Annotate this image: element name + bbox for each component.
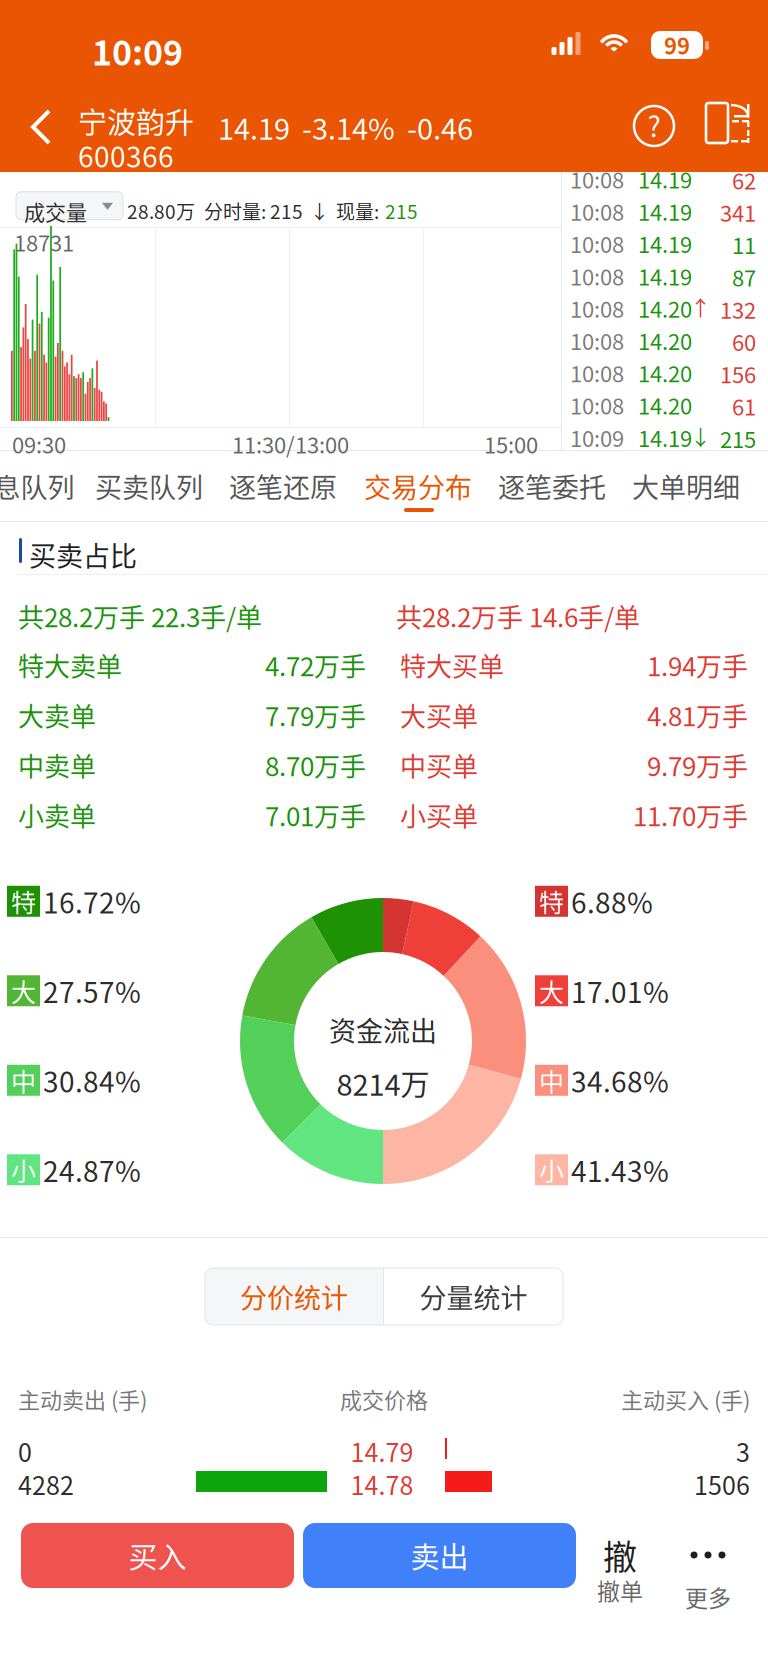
staticText: 10:08: [570, 389, 624, 421]
staticText: 卖出: [410, 1534, 468, 1576]
staticText: 中: [11, 1062, 36, 1098]
staticText: 14.19: [638, 195, 692, 227]
staticText: ↓: [310, 197, 329, 224]
button[interactable]: 买卖队列: [93, 451, 205, 521]
staticText: 27.57%: [43, 970, 141, 1011]
staticText: 大: [539, 973, 564, 1009]
staticText: 特大卖单: [18, 646, 122, 684]
staticText: 分价统计: [240, 1277, 348, 1316]
staticText: 10:08: [570, 195, 624, 227]
staticText: 逐笔委托: [498, 466, 606, 506]
button[interactable]: 返回: [14, 94, 70, 160]
staticText: ↓: [690, 420, 711, 451]
button[interactable]: 帮助: [632, 104, 676, 148]
staticText: 156: [720, 358, 756, 390]
staticText: 交易分布: [364, 466, 472, 506]
staticText: 中买单: [400, 746, 478, 784]
staticText: 买入: [128, 1534, 186, 1576]
staticText: 10:08: [570, 292, 624, 324]
staticText: 特: [11, 883, 36, 919]
staticText: 600366: [78, 135, 174, 175]
staticText: 18731: [14, 226, 74, 258]
staticText: 15:00: [484, 428, 538, 460]
staticText: 分量统计: [419, 1277, 527, 1316]
staticText: 10:09: [570, 421, 624, 453]
staticText: 41.43%: [571, 1149, 669, 1190]
staticText: 62: [732, 164, 756, 196]
staticText: 60: [732, 325, 756, 357]
staticText: 30.84%: [43, 1060, 141, 1100]
button[interactable]: 逐笔委托: [496, 451, 608, 521]
staticText: 中: [539, 1062, 564, 1098]
button[interactable]: 更多: [668, 1520, 748, 1590]
staticText: 大: [11, 973, 36, 1009]
staticText: 小: [539, 1152, 564, 1188]
staticText: 4.72万手: [265, 646, 366, 684]
staticText: 小买单: [400, 796, 478, 834]
staticText: 大单明细: [632, 466, 740, 506]
staticText: 14.19: [638, 228, 692, 259]
staticText: 成交价格: [340, 1383, 428, 1415]
button[interactable]: 卖出: [303, 1523, 576, 1588]
button[interactable]: 买入: [21, 1523, 294, 1588]
staticText: 0: [18, 1433, 32, 1469]
staticText: 10:08: [570, 260, 624, 292]
staticText: 买卖队列: [95, 466, 203, 506]
staticText: 17.01%: [571, 970, 669, 1011]
staticText: 3: [736, 1433, 750, 1469]
button[interactable]: 息队列: [0, 451, 90, 521]
button[interactable]: 分价统计: [205, 1268, 383, 1325]
staticText: 4.81万手: [647, 696, 748, 734]
staticText: 逐笔还原: [229, 466, 337, 506]
staticText: 14.19: [638, 163, 692, 195]
button[interactable]: 交易分布: [362, 451, 474, 521]
staticText: 16.72%: [43, 881, 141, 921]
staticText: 中卖单: [18, 746, 96, 784]
staticText: 61: [732, 390, 756, 422]
staticText: 息队列: [0, 466, 74, 506]
staticText: 14.20: [638, 389, 692, 421]
staticText: 24.87%: [43, 1149, 141, 1190]
staticText: 28.80万: [127, 197, 195, 224]
staticText: 特大买单: [400, 646, 504, 684]
staticText: 小: [11, 1152, 36, 1188]
staticText: 10:08: [570, 324, 624, 356]
button[interactable]: 成交量: [16, 193, 123, 221]
staticText: 9.79万手: [647, 746, 748, 784]
staticText: 10:08: [570, 228, 624, 259]
button[interactable]: 大单明细: [630, 451, 742, 521]
staticText: 大卖单: [18, 696, 96, 734]
staticText: 8214万: [336, 1062, 429, 1104]
staticText: 215: [720, 422, 756, 454]
staticText: 10:08: [570, 163, 624, 195]
button[interactable]: 切换布局: [706, 102, 752, 148]
staticText: 特: [539, 883, 564, 919]
staticText: 6.88%: [571, 881, 653, 921]
staticText: ↑: [690, 291, 711, 322]
staticText: 14.20: [638, 292, 692, 324]
staticText: ?: [647, 105, 660, 145]
staticText: 09:30: [12, 428, 66, 460]
staticText: 11: [732, 229, 756, 260]
staticText: 87: [732, 261, 756, 293]
staticText: 10:09: [92, 26, 183, 75]
staticText: 更多: [685, 1580, 731, 1613]
staticText: 分时量: 215: [204, 197, 303, 224]
button[interactable]: 撤: [580, 1520, 660, 1590]
staticText: 1.94万手: [647, 646, 748, 684]
staticText: 主动买入 (手): [621, 1383, 750, 1415]
staticText: 小卖单: [18, 796, 96, 834]
staticText: 共28.2万手 14.6手/单: [396, 597, 640, 635]
staticText: 215: [385, 197, 418, 224]
staticText: 撤: [603, 1530, 637, 1580]
staticText: 132: [720, 293, 756, 325]
staticText: 8.70万手: [265, 746, 366, 784]
staticText: 大买单: [400, 696, 478, 734]
button[interactable]: 分量统计: [384, 1268, 563, 1325]
staticText: 7.79万手: [265, 696, 366, 734]
staticText: 14.19 -3.14% -0.46: [218, 106, 473, 148]
staticText: 1506: [694, 1466, 750, 1502]
button[interactable]: 逐笔还原: [227, 451, 339, 521]
staticText: 共28.2万手 22.3手/单: [18, 597, 262, 635]
staticText: 7.01万手: [265, 796, 366, 834]
